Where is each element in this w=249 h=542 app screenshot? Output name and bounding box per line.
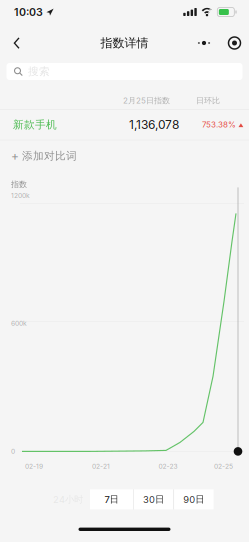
button[interactable]: 搜索: [6, 63, 242, 80]
staticText: 10:03: [14, 5, 43, 18]
staticText: 600k: [11, 319, 27, 327]
staticText: 02-19: [25, 462, 43, 470]
staticText: 2月25日指数: [123, 95, 170, 106]
button[interactable]: 90日: [174, 489, 214, 509]
staticText: 日环比: [196, 95, 220, 106]
staticText: 指数详情: [100, 35, 148, 50]
button[interactable]: Back: [5, 30, 29, 55]
staticText: 90日: [183, 493, 204, 505]
staticText: 30日: [143, 493, 164, 505]
button[interactable]: More options: [195, 33, 241, 53]
staticText: 新款手机: [13, 118, 57, 131]
staticText: 24小时: [53, 493, 83, 505]
staticText: 753.38%: [202, 120, 236, 130]
staticText: 搜索: [28, 65, 50, 78]
staticText: 1200k: [11, 191, 30, 200]
button[interactable]: 30日: [134, 489, 173, 509]
staticText: 7日: [104, 493, 118, 505]
button[interactable]: 7日: [90, 489, 133, 509]
button[interactable]: 新款手机: [0, 110, 249, 140]
staticText: 02-21: [92, 462, 110, 470]
staticText: 02-23: [158, 462, 177, 470]
staticText: 1,136,078: [129, 117, 179, 132]
staticText: 02-25: [214, 462, 233, 470]
staticText: 0: [11, 447, 15, 455]
button[interactable]: +: [0, 140, 249, 171]
staticText: 添加对比词: [22, 149, 77, 163]
staticText: +: [11, 149, 19, 163]
staticText: 指数: [11, 179, 27, 189]
